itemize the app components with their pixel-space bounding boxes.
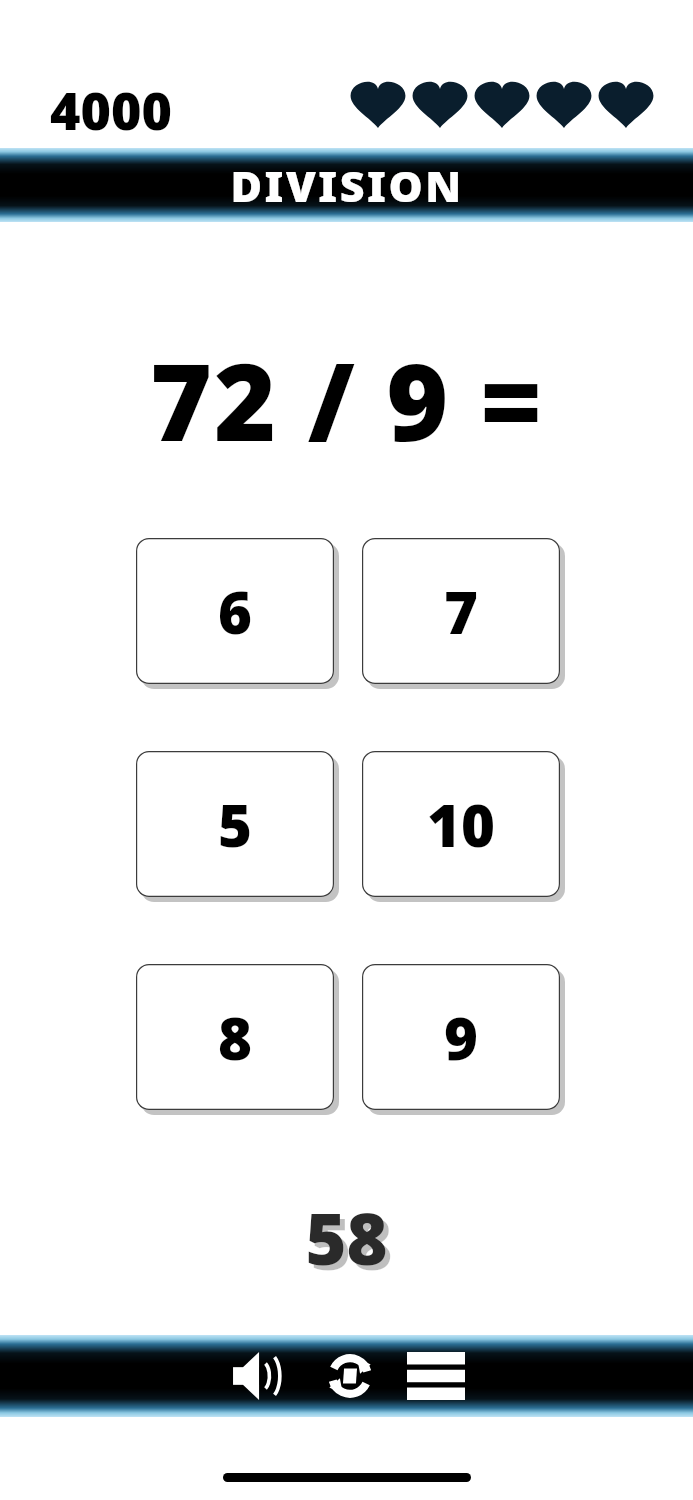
button[interactable]: 4000	[50, 74, 172, 145]
staticText: 8	[218, 998, 252, 1077]
button[interactable]: 8	[136, 964, 334, 1110]
button[interactable]: 9	[362, 964, 560, 1110]
button[interactable]: DIVISION	[0, 148, 693, 222]
button[interactable]: Refresh	[317, 1343, 383, 1409]
staticText: 6	[218, 572, 252, 651]
staticText: 5	[218, 785, 252, 864]
staticText: 4000	[50, 74, 172, 145]
staticText: DIVISION	[230, 156, 464, 215]
button[interactable]: 10	[362, 751, 560, 897]
button[interactable]: Menu	[403, 1343, 469, 1409]
button[interactable]: 5	[136, 751, 334, 897]
button[interactable]: 6	[136, 538, 334, 684]
staticText: 72 / 9 =	[150, 328, 544, 472]
staticText: 10	[427, 785, 495, 864]
staticText: 58	[310, 1195, 393, 1290]
button[interactable]: Sound	[225, 1343, 291, 1409]
button[interactable]: 7	[362, 538, 560, 684]
staticText: 58	[305, 1190, 388, 1285]
staticText: 7	[444, 572, 478, 651]
staticText: 9	[444, 998, 478, 1077]
